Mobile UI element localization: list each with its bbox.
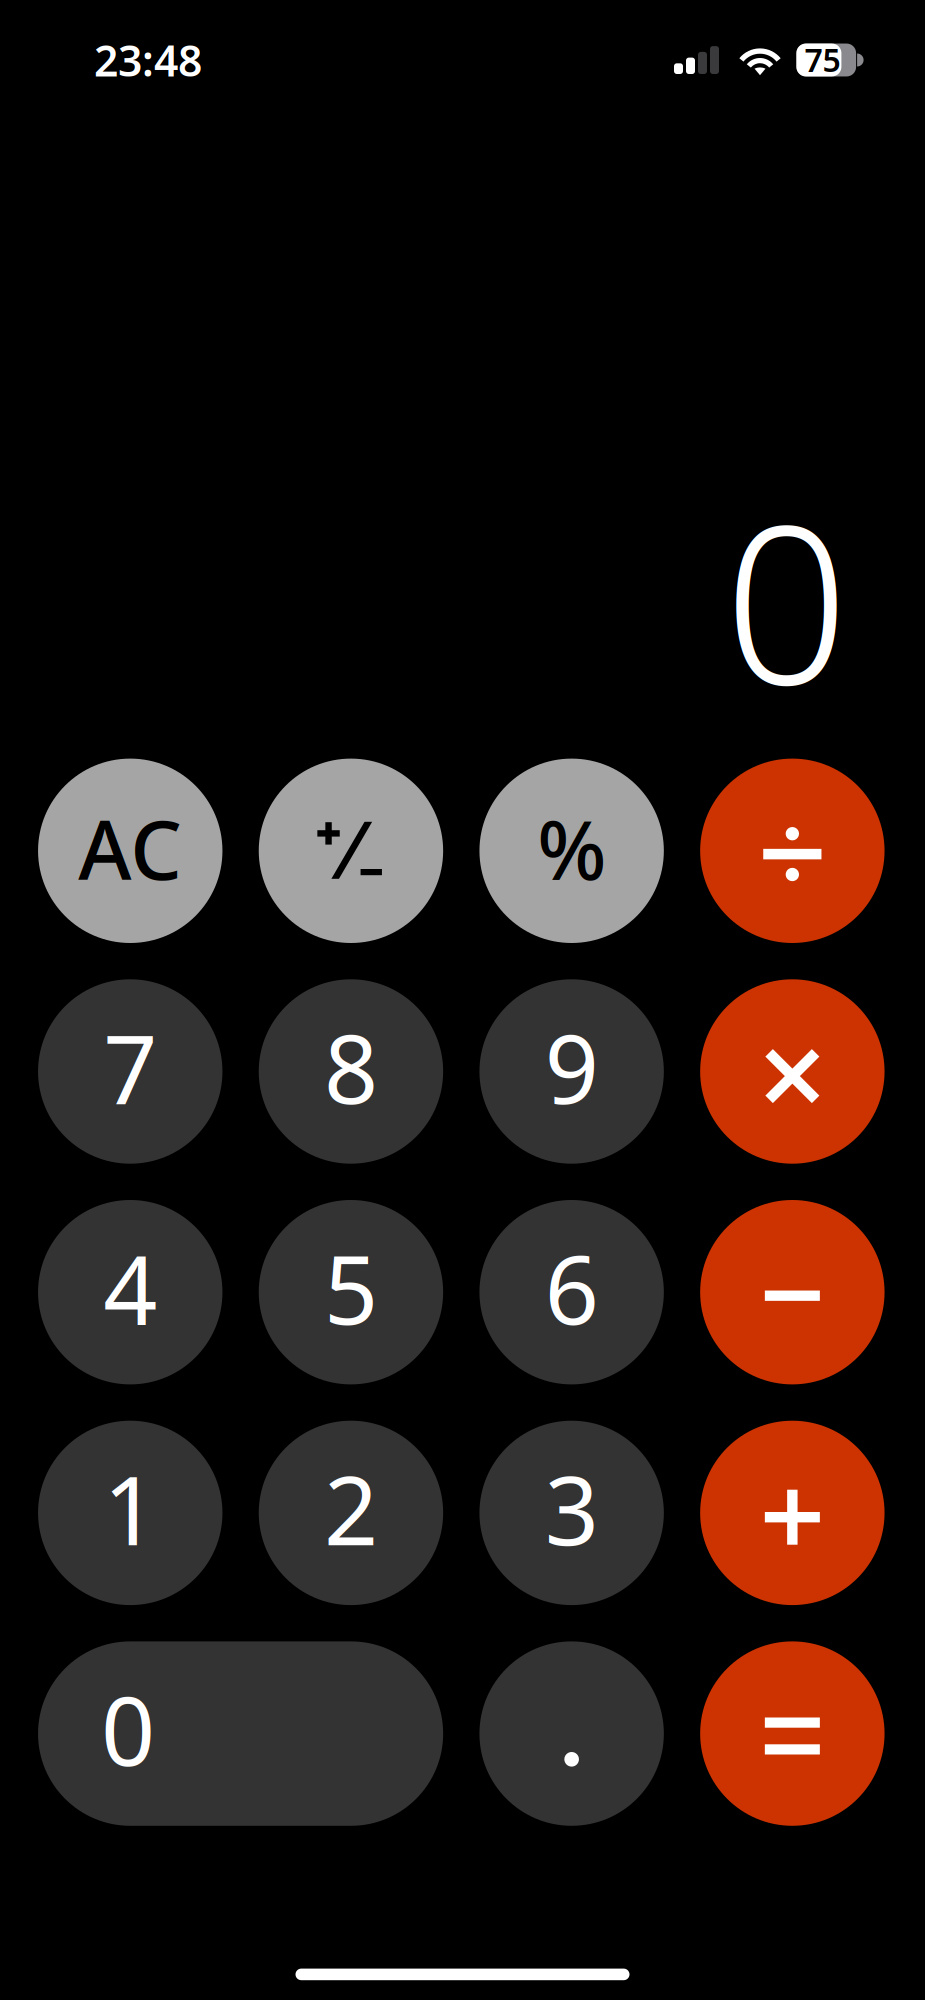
button[interactable]: 2 xyxy=(259,1421,443,1605)
staticText: 9 xyxy=(545,1004,599,1130)
staticText: 0 xyxy=(724,454,849,745)
button[interactable]: 8 xyxy=(259,979,443,1164)
button[interactable]: 5 xyxy=(259,1200,443,1384)
staticText: 75 xyxy=(804,38,840,81)
staticText: 2 xyxy=(324,1445,378,1571)
button[interactable]: Multiply xyxy=(700,979,884,1164)
button[interactable]: 7 xyxy=(38,979,222,1164)
button[interactable]: Add xyxy=(700,1421,884,1605)
staticText: % xyxy=(537,794,606,902)
button[interactable]: Equals xyxy=(700,1641,885,1826)
staticText: 7 xyxy=(103,1004,157,1130)
staticText: 4 xyxy=(103,1225,157,1350)
button[interactable]: 0 xyxy=(38,1641,443,1826)
button[interactable]: Divide xyxy=(700,759,884,943)
button[interactable]: 3 xyxy=(479,1421,664,1605)
staticText: 0 xyxy=(101,1666,155,1792)
button[interactable]: 6 xyxy=(479,1200,664,1384)
button[interactable]: 4 xyxy=(38,1200,222,1384)
button[interactable]: % xyxy=(479,759,664,943)
staticText: 6 xyxy=(545,1225,599,1350)
button[interactable]: 9 xyxy=(479,979,664,1164)
staticText: 23:48 xyxy=(94,32,202,88)
staticText: 1 xyxy=(103,1445,157,1571)
staticText: 5 xyxy=(324,1225,378,1350)
button[interactable]: AC xyxy=(38,759,222,943)
staticText: AC xyxy=(78,794,182,902)
button[interactable]: Subtract xyxy=(700,1200,884,1384)
button[interactable]: 1 xyxy=(38,1421,222,1605)
staticText: 8 xyxy=(324,1004,378,1130)
button[interactable]: Plus Minus xyxy=(259,759,443,943)
button[interactable]: Decimal point xyxy=(479,1641,664,1826)
staticText: 3 xyxy=(545,1445,599,1571)
